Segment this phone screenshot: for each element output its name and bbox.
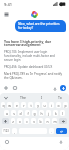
staticText: r [23, 103, 25, 108]
staticText: PROJ-456: Update dashboard UI/UX [4, 65, 53, 69]
staticText: k [55, 111, 57, 116]
button[interactable]: z [11, 118, 15, 124]
staticText: m [53, 119, 57, 124]
staticText: c [26, 119, 28, 124]
staticText: b [39, 119, 42, 124]
button[interactable]: c [24, 118, 29, 124]
staticText: To [58, 95, 62, 100]
button[interactable]: Add [3, 85, 9, 91]
button[interactable]: Attach image [12, 85, 18, 91]
button[interactable]: l [60, 110, 65, 116]
staticText: g [33, 111, 36, 116]
staticText: Mark PROJ-789 as 'In Progress' and notif… [4, 72, 64, 80]
button[interactable]: g [32, 110, 37, 116]
button[interactable]: y [35, 102, 40, 108]
staticText: You have 3 high-priority, due tomorrow a… [4, 39, 64, 47]
button[interactable]: ?123 [2, 128, 10, 134]
button[interactable]: Shift [2, 118, 9, 124]
button[interactable]: Backspace [59, 118, 67, 124]
button[interactable]: x [17, 118, 22, 124]
button[interactable]: e [14, 102, 19, 108]
button[interactable]: Microphone [58, 139, 63, 144]
button[interactable]: w [7, 102, 12, 108]
button[interactable]: d [18, 110, 23, 116]
button[interactable]: j [46, 110, 51, 116]
button[interactable]: p [63, 102, 68, 108]
button[interactable]: o [56, 102, 61, 108]
staticText: . [51, 129, 52, 134]
button[interactable]: n [45, 118, 50, 124]
staticText: h [40, 111, 43, 116]
staticText: ?123 [3, 129, 9, 133]
staticText: j [48, 111, 49, 116]
button[interactable]: Voice input [51, 85, 58, 92]
button[interactable]: Language [4, 139, 9, 144]
staticText: v [33, 119, 35, 124]
button[interactable]: Send [60, 85, 66, 91]
button[interactable]: , [12, 128, 17, 134]
button[interactable]: q [1, 102, 5, 108]
button[interactable]: t [28, 102, 33, 108]
button[interactable]: h [39, 110, 44, 116]
staticText: d [19, 111, 22, 116]
staticText: z [12, 119, 14, 124]
staticText: 9:41 [4, 2, 12, 7]
staticText: e [16, 103, 18, 108]
staticText: y [37, 103, 39, 108]
staticText: i [51, 103, 52, 108]
button[interactable]: u [42, 102, 47, 108]
staticText: o [57, 103, 60, 108]
staticText: s [13, 111, 15, 116]
button[interactable]: . [49, 128, 54, 134]
button[interactable]: b [38, 118, 43, 124]
button[interactable]: f [25, 110, 30, 116]
staticText: The [20, 95, 26, 100]
staticText: t [30, 103, 32, 108]
button[interactable]: Nico, what are the priorities for today? [15, 20, 66, 32]
button[interactable]: r [21, 102, 26, 108]
staticText: w [8, 103, 11, 108]
button[interactable]: m [52, 118, 57, 124]
button[interactable]: v [31, 118, 36, 124]
staticText: a [6, 111, 8, 116]
staticText: u [43, 103, 46, 108]
button[interactable]: Enter [56, 128, 67, 134]
button[interactable]: k [53, 110, 58, 116]
staticText: x [19, 119, 21, 124]
staticText: PROJ-103: Implement user login functiona… [4, 50, 64, 62]
staticText: , [14, 129, 15, 134]
staticText: q [2, 103, 5, 108]
staticText: p [64, 103, 67, 108]
button[interactable]: s [11, 110, 16, 116]
staticText: I [41, 95, 43, 100]
staticText: Nico, what are the priorities for today? [18, 22, 63, 30]
button[interactable]: i [49, 102, 54, 108]
button[interactable]: a [4, 110, 9, 116]
staticText: l [62, 111, 63, 116]
button[interactable]: Menu [2, 10, 10, 18]
staticText: n [46, 119, 49, 124]
button[interactable]: Hide keyboard [2, 94, 9, 101]
staticText: f [27, 111, 29, 116]
